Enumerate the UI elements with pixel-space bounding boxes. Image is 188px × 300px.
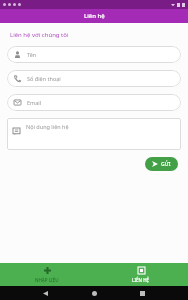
staticText: Liên hệ với chúng tôi [10, 31, 69, 39]
button[interactable]: Nội dung liên hệ [7, 118, 181, 150]
button[interactable]: Email [7, 94, 181, 111]
other: Home [92, 291, 97, 296]
button[interactable]: GỬI [145, 157, 178, 171]
staticText: LIÊN HỆ [132, 277, 150, 283]
staticText: Tên [27, 51, 37, 58]
staticText: Nội dung liên hệ [26, 123, 69, 130]
staticText: Email [27, 99, 42, 106]
button[interactable]: Số điện thoại [7, 70, 181, 87]
button[interactable]: NHẬP LIỆU [0, 263, 94, 286]
staticText: NHẬP LIỆU [35, 277, 59, 283]
staticText: Liên hệ [84, 12, 105, 20]
other: Back [43, 291, 48, 296]
staticText: GỬI [161, 161, 171, 168]
button[interactable]: Tên [7, 46, 181, 63]
staticText: Số điện thoại [27, 75, 61, 82]
button[interactable]: LIÊN HỆ [94, 263, 188, 286]
